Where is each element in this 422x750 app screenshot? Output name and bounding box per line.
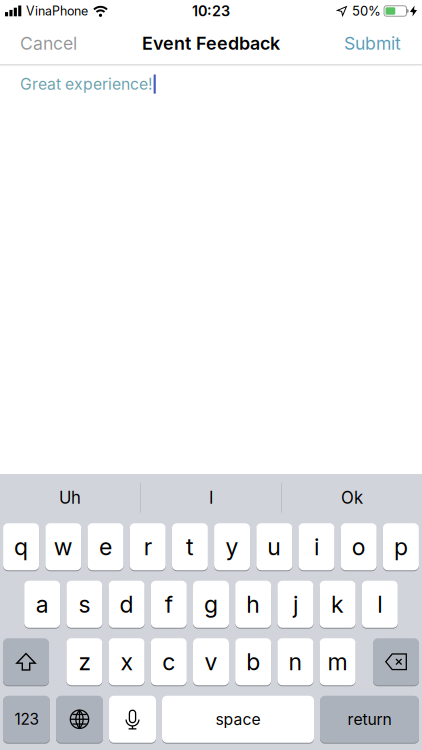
staticText: q — [14, 533, 28, 561]
staticText: i — [314, 533, 319, 561]
staticText: v — [204, 648, 217, 676]
staticText: Uh — [59, 488, 81, 508]
staticText: d — [120, 590, 134, 618]
staticText: f — [165, 590, 173, 618]
staticText: VinaPhone — [26, 3, 88, 18]
staticText: t — [186, 533, 194, 561]
staticText: y — [226, 533, 239, 561]
staticText: o — [352, 533, 366, 561]
staticText: n — [288, 648, 302, 676]
staticText: I — [209, 488, 213, 508]
staticText: p — [394, 533, 408, 561]
staticText: m — [328, 648, 348, 676]
staticText: c — [162, 648, 175, 676]
staticText: b — [246, 648, 260, 676]
staticText: j — [293, 590, 298, 618]
staticText: k — [331, 590, 344, 618]
staticText: space — [215, 710, 260, 729]
staticText: Ok — [341, 488, 363, 508]
staticText: w — [54, 533, 73, 561]
staticText: return — [347, 710, 391, 729]
staticText: Great experience! — [20, 74, 153, 93]
staticText: Event Feedback — [142, 32, 280, 54]
staticText: Submit — [344, 33, 401, 54]
staticText: a — [36, 590, 49, 618]
staticText: r — [144, 533, 152, 561]
staticText: h — [246, 590, 260, 618]
staticText: s — [78, 590, 90, 618]
staticText: z — [78, 648, 90, 676]
staticText: x — [121, 648, 133, 676]
staticText: 123 — [14, 710, 38, 729]
staticText: e — [99, 533, 112, 561]
staticText: 10:23 — [192, 2, 230, 20]
staticText: l — [377, 590, 382, 618]
staticText: g — [204, 590, 218, 618]
staticText: 50% — [352, 3, 381, 19]
staticText: Cancel — [20, 33, 77, 54]
staticText: u — [267, 533, 281, 561]
